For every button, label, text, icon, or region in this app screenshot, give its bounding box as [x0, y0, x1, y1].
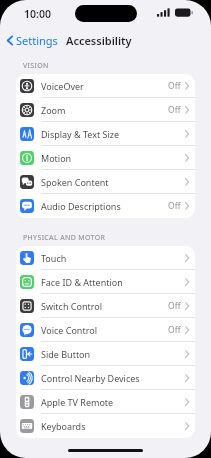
- staticText: PHYSICAL AND MOTOR: [23, 233, 106, 243]
- staticText: Off: [168, 200, 181, 212]
- button[interactable]: Apple TV Remote: [16, 390, 195, 414]
- staticText: 10:00: [24, 7, 51, 21]
- staticText: Audio Descriptions: [41, 200, 121, 212]
- button[interactable]: Control Nearby Devices: [16, 366, 195, 390]
- button[interactable]: Audio Descriptions: [16, 194, 195, 218]
- staticText: Touch: [41, 252, 67, 264]
- button[interactable]: Spoken Content: [16, 170, 195, 194]
- staticText: Off: [168, 300, 181, 312]
- button[interactable]: Face ID & Attention: [16, 270, 195, 294]
- staticText: Spoken Content: [41, 176, 109, 188]
- staticText: Apple TV Remote: [41, 396, 114, 408]
- staticText: Accessibility: [66, 33, 132, 48]
- button[interactable]: Touch: [16, 246, 195, 270]
- staticText: Switch Control: [41, 300, 103, 312]
- button[interactable]: Settings: [0, 31, 64, 50]
- staticText: Face ID & Attention: [41, 276, 123, 288]
- staticText: Off: [168, 324, 181, 336]
- staticText: Voice Control: [41, 324, 97, 336]
- button[interactable]: Keyboards: [16, 414, 195, 438]
- staticText: VoiceOver: [41, 80, 84, 92]
- staticText: Off: [168, 80, 181, 92]
- staticText: Zoom: [41, 104, 66, 116]
- button[interactable]: Display & Text Size: [16, 122, 195, 146]
- staticText: Display & Text Size: [41, 128, 120, 140]
- button[interactable]: Voice Control: [16, 318, 195, 342]
- staticText: Control Nearby Devices: [41, 372, 140, 384]
- button[interactable]: Zoom: [16, 98, 195, 122]
- staticText: Side Button: [41, 348, 91, 360]
- button[interactable]: Motion: [16, 146, 195, 170]
- staticText: Off: [168, 104, 181, 116]
- button[interactable]: Switch Control: [16, 294, 195, 318]
- button[interactable]: Side Button: [16, 342, 195, 366]
- staticText: Motion: [41, 152, 72, 164]
- staticText: Settings: [16, 33, 58, 48]
- button[interactable]: VoiceOver: [16, 74, 195, 98]
- staticText: Keyboards: [41, 420, 86, 432]
- staticText: VISION: [23, 61, 49, 71]
